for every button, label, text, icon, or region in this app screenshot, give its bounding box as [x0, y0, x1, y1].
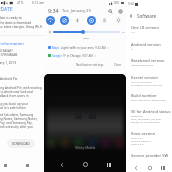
staticText: January 1, 2019 — [0, 61, 16, 65]
staticText: One UI version — [131, 25, 159, 30]
button[interactable]: Quick setting 1 — [60, 16, 69, 25]
staticText: Improved Calculator, Samsung — [0, 113, 34, 117]
staticText: G975U1OYN3ASAB — [0, 53, 18, 57]
staticText: Knox version — [131, 131, 156, 136]
button[interactable]: Baseband version — [126, 58, 172, 66]
staticText: 41% — [17, 1, 24, 5]
staticText: Xfinity Mobile — [75, 146, 96, 150]
staticText: Knox API level 31 — [131, 139, 151, 142]
staticText: Knox 3.3.1 — [131, 136, 144, 139]
button[interactable]: Quick setting 0 — [46, 16, 55, 25]
staticText: Android Pie — [0, 77, 18, 81]
button[interactable]: One UI version — [126, 25, 172, 33]
staticText: may incur extra charges. Using Wi-Fi — [0, 25, 33, 29]
button[interactable]: Google — [48, 52, 126, 59]
staticText: 9:34 — [128, 2, 134, 6]
button[interactable]: Software information — [129, 11, 172, 21]
button[interactable]: Maps — [48, 44, 126, 51]
staticText: Enforcing — [131, 114, 143, 117]
staticText: DOWNLOAD — [12, 142, 30, 146]
staticText: Helping you back up your — [0, 102, 29, 106]
button[interactable]: Clear — [113, 62, 123, 68]
button[interactable]: Recents — [158, 163, 167, 172]
staticText: Update information — [0, 41, 24, 47]
staticText: A new software update is ready to — [0, 16, 16, 20]
button[interactable]: Home — [145, 163, 154, 172]
staticText: G892U1UEU3ASAB — [131, 63, 154, 66]
staticText: feel. Based on feedback from users in — [0, 94, 19, 98]
staticText: 9:34 — [48, 7, 59, 14]
staticText: TIMA 4.2.0 — [131, 142, 144, 145]
staticText: 50% — [114, 1, 120, 5]
button[interactable]: Home — [80, 159, 91, 170]
staticText: Android version — [131, 42, 161, 47]
staticText: Service provider SW ver. — [131, 153, 172, 158]
staticText: G975U1UEU3ASAF/ — [0, 49, 13, 53]
button[interactable]: Settings — [117, 8, 123, 14]
button[interactable]: Knox version — [126, 131, 172, 145]
staticText: 9:07 AM — [82, 54, 93, 58]
staticText: Notification settings — [76, 63, 104, 67]
button[interactable]: Build number — [126, 93, 172, 101]
staticText: features and a whole new look and — [0, 90, 27, 94]
staticText: Health, Samsung Notes, Samsung Notes, — [0, 117, 23, 121]
button[interactable]: Quick setting 5 — [114, 16, 123, 25]
button[interactable]: Kernel version — [126, 75, 172, 86]
button[interactable]: Back — [56, 159, 67, 170]
button[interactable]: Recents — [103, 159, 114, 170]
button[interactable]: SE for Android status — [126, 109, 172, 123]
staticText: PPR1.180610.011.G892U1UEU — [131, 98, 167, 101]
staticText: information so that it is safe before — [0, 106, 20, 110]
staticText: Kernel version — [131, 75, 158, 80]
button[interactable]: Quick setting 2 — [73, 16, 82, 25]
staticText: Tue, January 29 — [62, 8, 91, 13]
staticText: SE for Android status — [131, 109, 171, 114]
staticText: 4.9.112-15719440 — [131, 80, 152, 83]
staticText: Build number — [131, 93, 157, 98]
staticText: SEPF_SM-G965U_9.0_0001 — [131, 117, 162, 120]
staticText: #1 Tue Jan 15 20:18:53 KST — [131, 83, 163, 86]
staticText: SOFTWARE UPDATE — [0, 6, 12, 13]
button[interactable]: Android version — [126, 42, 172, 50]
staticText: Light traffic in your area — [61, 46, 94, 50]
staticText: Software information — [137, 13, 172, 19]
staticText: 9:32 AM — [95, 46, 106, 50]
button[interactable]: Notification settings — [75, 62, 105, 68]
button[interactable]: Search — [107, 8, 113, 14]
button[interactable]: DOWNLOAD — [7, 139, 35, 148]
staticText: 9 — [131, 47, 133, 50]
button[interactable]: Quick setting 4 — [100, 16, 109, 25]
staticText: Tue Jan 15 19:18:53 2019 — [131, 120, 160, 123]
staticText: Samsung Pay, and Samsung Pay, — [0, 121, 30, 125]
staticText: Introducing Android Pie, with exciting — [0, 86, 32, 90]
staticText: 6:12 am — [32, 1, 44, 5]
button[interactable]: Back — [131, 163, 140, 172]
button[interactable]: Service provider SW ver. — [126, 153, 172, 158]
staticText: 1.0 — [131, 30, 135, 33]
staticText: and continuity after you — [0, 125, 33, 129]
button[interactable]: Quick setting 3 — [87, 16, 96, 25]
staticText: Clear — [114, 63, 122, 67]
staticText: 9° in Chicago — [63, 54, 81, 58]
staticText: Google — [52, 54, 62, 58]
staticText: Maps — [52, 46, 60, 50]
staticText: Baseband version — [131, 58, 165, 63]
staticText: install. Downloading the data to downloa… — [0, 21, 13, 25]
